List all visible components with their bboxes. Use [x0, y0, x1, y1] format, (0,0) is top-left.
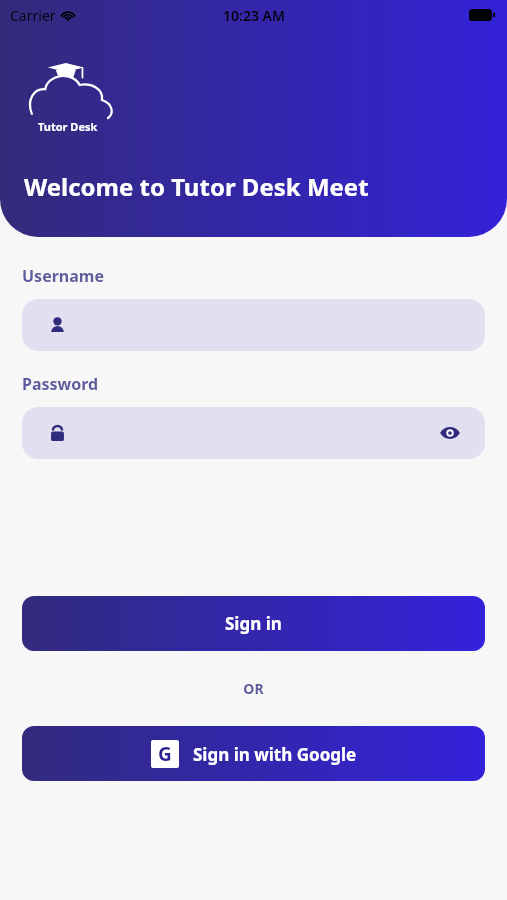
- staticText: OR: [22, 679, 485, 698]
- button[interactable]: Show password: [433, 416, 467, 450]
- staticText: Welcome to Tutor Desk Meet: [24, 170, 369, 203]
- button[interactable]: Sign in: [22, 596, 485, 651]
- staticText: Sign in with Google: [193, 743, 357, 766]
- staticText: Sign in: [225, 612, 282, 635]
- other: Password: [48, 424, 67, 443]
- button[interactable]: G: [22, 726, 485, 781]
- staticText: Username: [22, 265, 104, 287]
- button[interactable]: Password: [22, 407, 485, 459]
- other: Username: [48, 316, 67, 335]
- staticText: Tutor Desk: [38, 119, 98, 134]
- staticText: Password: [22, 373, 99, 395]
- button[interactable]: Username: [22, 299, 485, 351]
- staticText: G: [158, 741, 172, 767]
- staticText: Carrier: [10, 6, 56, 25]
- staticText: 10:23 AM: [223, 6, 285, 25]
